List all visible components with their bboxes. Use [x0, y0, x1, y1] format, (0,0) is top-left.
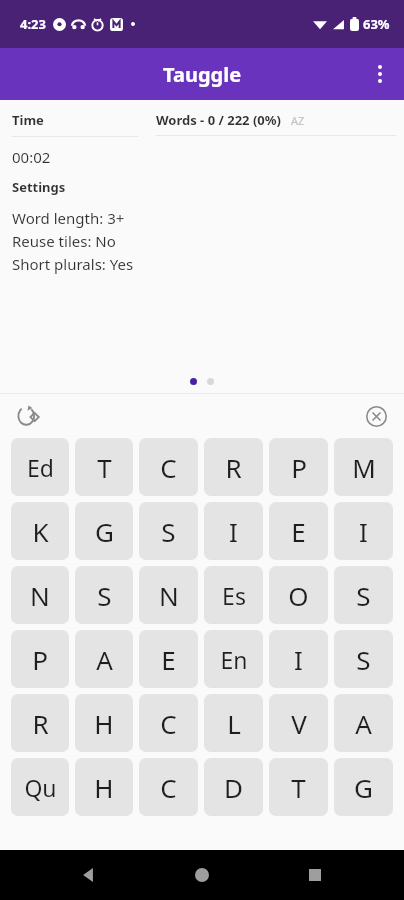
staticText: I: [229, 514, 238, 549]
staticText: G: [354, 770, 373, 805]
staticText: 4:23: [20, 15, 46, 33]
staticText: E: [291, 514, 306, 549]
staticText: M: [352, 450, 376, 485]
button[interactable]: Es: [204, 566, 263, 624]
button[interactable]: H: [75, 694, 133, 752]
staticText: T: [291, 770, 306, 805]
staticText: E: [161, 642, 176, 677]
staticText: G: [95, 514, 114, 549]
button[interactable]: N: [139, 566, 198, 624]
button[interactable]: Recent apps: [291, 851, 339, 899]
button[interactable]: R: [11, 694, 69, 752]
button[interactable]: Home: [178, 851, 226, 899]
staticText: S: [356, 642, 371, 677]
button[interactable]: I: [334, 502, 393, 560]
button[interactable]: S: [75, 566, 133, 624]
staticText: V: [291, 706, 307, 741]
button[interactable]: G: [334, 758, 393, 816]
button[interactable]: P: [269, 438, 328, 496]
staticText: P: [32, 642, 48, 677]
button[interactable]: I: [269, 630, 328, 688]
button[interactable]: E: [269, 502, 328, 560]
button[interactable]: T: [269, 758, 328, 816]
staticText: I: [359, 514, 368, 549]
button[interactable]: T: [75, 438, 133, 496]
button[interactable]: Clear: [354, 394, 398, 438]
staticText: I: [294, 642, 303, 677]
staticText: K: [32, 514, 49, 549]
button[interactable]: Shuffle tiles: [6, 394, 50, 438]
staticText: Time: [12, 111, 44, 129]
staticText: Tauggle: [163, 61, 242, 88]
button[interactable]: A: [75, 630, 133, 688]
button[interactable]: A: [334, 694, 393, 752]
staticText: S: [356, 578, 371, 613]
button[interactable]: Ed: [11, 438, 69, 496]
button[interactable]: Qu: [11, 758, 69, 816]
staticText: A: [96, 642, 113, 677]
staticText: Reuse tiles: No: [12, 231, 116, 251]
button[interactable]: Sort alphabetically: [289, 111, 307, 129]
button[interactable]: C: [139, 758, 198, 816]
button[interactable]: En: [204, 630, 263, 688]
staticText: N: [159, 578, 179, 613]
button[interactable]: S: [334, 630, 393, 688]
staticText: T: [97, 450, 112, 485]
staticText: S: [161, 514, 176, 549]
staticText: O: [288, 578, 309, 613]
staticText: D: [224, 770, 243, 805]
staticText: C: [160, 770, 177, 805]
staticText: 63%: [363, 15, 390, 33]
button[interactable]: V: [269, 694, 328, 752]
staticText: Words - 0 / 222 (0%): [156, 111, 281, 129]
staticText: Es: [222, 580, 246, 611]
staticText: L: [227, 706, 241, 741]
staticText: C: [160, 450, 177, 485]
button[interactable]: H: [75, 758, 133, 816]
staticText: Ed: [27, 452, 54, 483]
button[interactable]: D: [204, 758, 263, 816]
button[interactable]: S: [139, 502, 198, 560]
staticText: 00:02: [12, 147, 51, 167]
staticText: N: [30, 578, 50, 613]
staticText: A: [355, 706, 372, 741]
button[interactable]: L: [204, 694, 263, 752]
button[interactable]: S: [334, 566, 393, 624]
button[interactable]: More options: [356, 50, 404, 98]
staticText: P: [291, 450, 307, 485]
staticText: Short plurals: Yes: [12, 254, 134, 274]
staticText: En: [220, 644, 248, 675]
button[interactable]: N: [11, 566, 69, 624]
button[interactable]: Back: [65, 851, 113, 899]
button[interactable]: G: [75, 502, 133, 560]
staticText: C: [160, 706, 177, 741]
staticText: Settings: [12, 178, 66, 196]
staticText: Qu: [24, 772, 57, 803]
button[interactable]: C: [139, 694, 198, 752]
button[interactable]: K: [11, 502, 69, 560]
button[interactable]: P: [11, 630, 69, 688]
staticText: S: [97, 578, 112, 613]
button[interactable]: I: [204, 502, 263, 560]
button[interactable]: M: [334, 438, 393, 496]
button[interactable]: E: [139, 630, 198, 688]
button[interactable]: O: [269, 566, 328, 624]
button[interactable]: R: [204, 438, 263, 496]
staticText: R: [32, 706, 49, 741]
button[interactable]: C: [139, 438, 198, 496]
staticText: AZ: [291, 113, 305, 128]
staticText: H: [94, 706, 114, 741]
staticText: H: [94, 770, 114, 805]
staticText: R: [225, 450, 242, 485]
staticText: Word length: 3+: [12, 208, 125, 228]
